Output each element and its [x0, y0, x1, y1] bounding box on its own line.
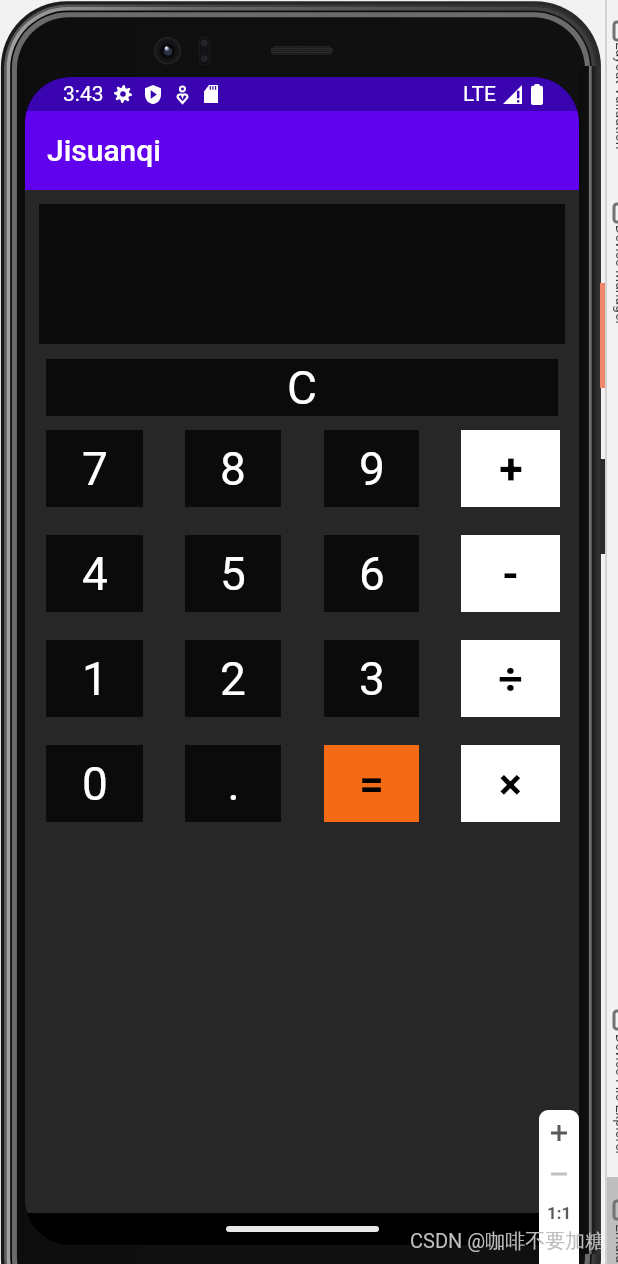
button[interactable]: 0: [46, 745, 143, 822]
button[interactable]: Zoom out: [539, 1154, 579, 1193]
button[interactable]: Layout Validation: [613, 42, 618, 150]
staticText: 4: [82, 547, 108, 601]
button[interactable]: 4: [46, 535, 143, 612]
staticText: ×: [499, 759, 522, 809]
staticText: Device Manager: [613, 225, 618, 326]
button[interactable]: 2: [185, 640, 281, 717]
staticText: 1: [82, 652, 108, 706]
button[interactable]: =: [324, 745, 419, 822]
button[interactable]: Zoom in: [539, 1112, 579, 1154]
staticText: 3: [359, 652, 385, 706]
button[interactable]: Tool window: [609, 204, 618, 222]
staticText: Device File Explorer: [613, 1034, 618, 1156]
button[interactable]: 7: [46, 430, 143, 507]
button[interactable]: Actual size: [539, 1193, 579, 1233]
button[interactable]: C: [46, 359, 558, 416]
button[interactable]: Tool window: [609, 1201, 618, 1219]
staticText: C: [287, 361, 317, 415]
button[interactable]: 5: [185, 535, 281, 612]
staticText: +: [499, 444, 523, 494]
staticText: 1:1: [547, 1203, 572, 1223]
button[interactable]: Emulator: [613, 1224, 618, 1264]
button[interactable]: 3: [324, 640, 419, 717]
button[interactable]: 1: [46, 640, 143, 717]
staticText: 0: [82, 757, 108, 811]
staticText: 7: [82, 442, 108, 496]
staticText: 6: [359, 547, 385, 601]
button[interactable]: .: [185, 745, 281, 822]
button[interactable]: 9: [324, 430, 419, 507]
staticText: CSDN @咖啡不要加糖: [410, 1229, 606, 1254]
button[interactable]: Device Manager: [613, 225, 618, 326]
button[interactable]: Tool window: [609, 1011, 618, 1029]
button[interactable]: Tool window: [609, 22, 618, 40]
staticText: .: [227, 757, 240, 811]
button[interactable]: +: [461, 430, 560, 507]
staticText: 8: [220, 442, 246, 496]
staticText: Layout Validation: [613, 42, 618, 150]
button[interactable]: -: [461, 535, 560, 612]
staticText: 3:43: [63, 82, 104, 107]
staticText: 5: [220, 547, 246, 601]
staticText: 2: [220, 652, 246, 706]
staticText: Emulator: [613, 1224, 618, 1264]
staticText: ÷: [498, 654, 523, 704]
staticText: =: [359, 759, 384, 809]
staticText: -: [502, 549, 519, 599]
button[interactable]: ÷: [461, 640, 560, 717]
staticText: 9: [359, 442, 385, 496]
button[interactable]: Device File Explorer: [613, 1034, 618, 1156]
button[interactable]: 8: [185, 430, 281, 507]
staticText: Jisuanqi: [47, 133, 161, 168]
button[interactable]: 6: [324, 535, 419, 612]
button[interactable]: ×: [461, 745, 560, 822]
staticText: LTE: [463, 82, 496, 107]
